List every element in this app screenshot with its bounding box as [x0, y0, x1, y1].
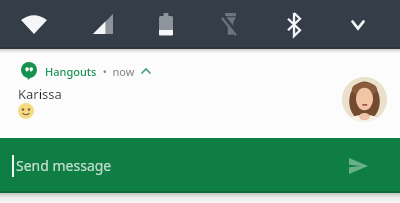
- button[interactable]: [14, 4, 54, 44]
- staticText: Hangouts: [45, 64, 97, 79]
- staticText: Send message: [16, 156, 112, 175]
- button[interactable]: [338, 146, 378, 186]
- button[interactable]: [338, 5, 378, 45]
- button[interactable]: [146, 4, 186, 44]
- button[interactable]: [342, 77, 387, 122]
- button[interactable]: [210, 4, 250, 44]
- button[interactable]: Send message: [0, 138, 400, 193]
- button[interactable]: [83, 4, 123, 44]
- staticText: Karissa: [18, 85, 62, 103]
- button[interactable]: [274, 4, 314, 44]
- button[interactable]: Hangouts: [18, 62, 151, 80]
- staticText: • now: [97, 64, 141, 79]
